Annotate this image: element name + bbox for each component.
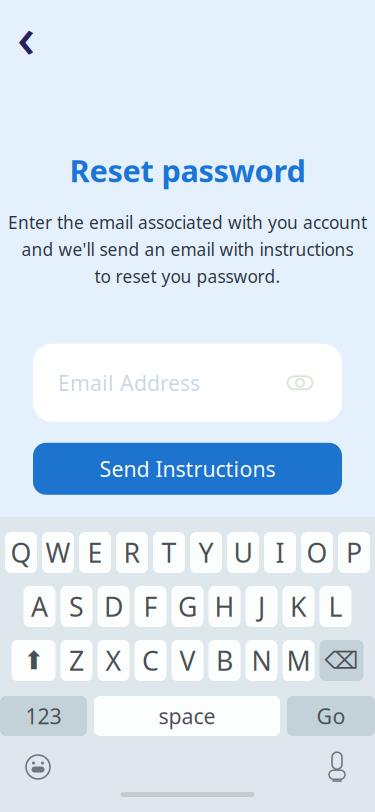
staticText: F: [143, 589, 157, 624]
button[interactable]: F: [134, 586, 166, 627]
button[interactable]: S: [60, 586, 92, 627]
staticText: E: [87, 535, 102, 570]
staticText: T: [161, 535, 176, 570]
button[interactable]: D: [97, 586, 129, 627]
button[interactable]: I: [264, 532, 296, 573]
staticText: D: [104, 589, 123, 624]
staticText: P: [346, 535, 362, 570]
button[interactable]: Y: [190, 532, 222, 573]
staticText: S: [69, 589, 84, 624]
button[interactable]: 123: [0, 696, 87, 736]
staticText: ‹: [17, 0, 35, 73]
staticText: K: [290, 589, 307, 624]
staticText: M: [286, 643, 310, 678]
staticText: O: [306, 535, 327, 570]
staticText: Z: [69, 643, 84, 678]
staticText: J: [258, 589, 265, 624]
button[interactable]: Go: [287, 696, 375, 736]
staticText: Send Instructions: [99, 455, 275, 483]
button[interactable]: Dictate: [319, 750, 355, 784]
button[interactable]: Send Instructions: [33, 443, 342, 495]
staticText: ⌫: [324, 647, 358, 674]
staticText: Email Address: [58, 369, 200, 397]
button[interactable]: Emoji: [20, 750, 56, 784]
button[interactable]: A: [23, 586, 55, 627]
button[interactable]: N: [245, 640, 277, 681]
button[interactable]: space: [94, 696, 280, 736]
staticText: ⬆: [23, 646, 44, 675]
button[interactable]: Z: [60, 640, 92, 681]
staticText: X: [105, 643, 121, 678]
button[interactable]: Show password: [283, 368, 317, 398]
staticText: Enter the email associated with you acco…: [8, 211, 367, 234]
staticText: B: [216, 643, 233, 678]
staticText: C: [142, 643, 159, 678]
button[interactable]: Shift: [11, 640, 55, 681]
staticText: W: [45, 535, 70, 570]
staticText: Y: [198, 535, 213, 570]
button[interactable]: Delete: [319, 640, 363, 681]
button[interactable]: C: [134, 640, 166, 681]
button[interactable]: M: [282, 640, 314, 681]
staticText: Q: [10, 535, 31, 570]
button[interactable]: J: [245, 586, 277, 627]
button[interactable]: V: [171, 640, 203, 681]
button[interactable]: B: [208, 640, 240, 681]
button[interactable]: T: [153, 532, 185, 573]
staticText: Go: [316, 702, 345, 730]
button[interactable]: G: [171, 586, 203, 627]
button[interactable]: X: [97, 640, 129, 681]
button[interactable]: E: [79, 532, 111, 573]
staticText: and we'll send an email with instruction…: [21, 238, 353, 261]
staticText: G: [178, 589, 197, 624]
staticText: I: [275, 535, 284, 570]
staticText: H: [214, 589, 234, 624]
button[interactable]: H: [208, 586, 240, 627]
staticText: 123: [25, 702, 61, 730]
staticText: U: [233, 535, 252, 570]
button[interactable]: W: [42, 532, 74, 573]
staticText: to reset you password.: [94, 265, 280, 288]
staticText: N: [251, 643, 271, 678]
button[interactable]: R: [116, 532, 148, 573]
staticText: space: [158, 702, 215, 730]
button[interactable]: Q: [5, 532, 37, 573]
staticText: A: [31, 589, 48, 624]
staticText: V: [179, 643, 195, 678]
button[interactable]: L: [319, 586, 351, 627]
staticText: Reset password: [69, 150, 305, 191]
button[interactable]: P: [338, 532, 370, 573]
button[interactable]: K: [282, 586, 314, 627]
staticText: L: [328, 589, 342, 624]
button[interactable]: Back: [4, 14, 48, 58]
staticText: R: [123, 535, 140, 570]
button[interactable]: O: [301, 532, 333, 573]
button[interactable]: U: [227, 532, 259, 573]
